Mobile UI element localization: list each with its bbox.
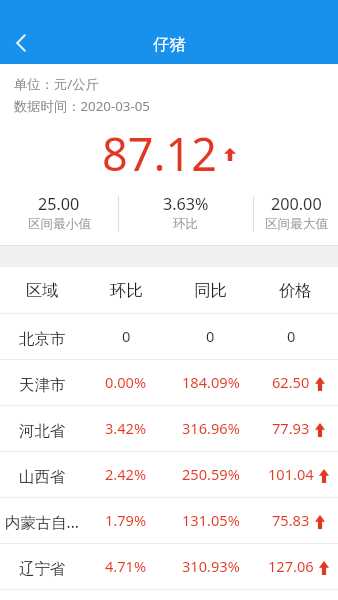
staticText: 316.96% (182, 418, 240, 438)
staticText: 131.05% (182, 510, 240, 530)
staticText: 0.00% (105, 372, 147, 392)
staticText: 环比 (173, 216, 199, 232)
button[interactable]: 200.00 (254, 190, 338, 234)
staticText: 价格 (279, 280, 312, 301)
staticText: 127.06 (268, 556, 314, 576)
button[interactable]: 河北省 (0, 406, 338, 451)
staticText: 184.09% (182, 372, 240, 392)
staticText: 天津市 (19, 375, 66, 394)
button[interactable]: 北京市 (0, 314, 338, 359)
staticText: 25.00 (38, 193, 80, 215)
staticText: 数据时间：2020-03-05 (14, 97, 150, 115)
staticText: 101.04 (268, 464, 314, 484)
staticText: 87.12 (102, 123, 218, 184)
staticText: 内蒙古自... (5, 512, 79, 533)
staticText: 辽宁省 (19, 559, 66, 578)
staticText: 环比 (110, 280, 143, 301)
staticText: 山西省 (19, 467, 66, 486)
button[interactable]: 山西省 (0, 452, 338, 497)
staticText: 62.50 (272, 372, 310, 392)
staticText: 3.63% (163, 193, 209, 215)
staticText: 区间最小值 (28, 216, 91, 232)
staticText: 3.42% (105, 418, 147, 438)
staticText: 4.71% (105, 556, 147, 576)
staticText: 75.83 (272, 510, 310, 530)
button[interactable]: 辽宁省 (0, 544, 338, 589)
staticText: 2.42% (105, 464, 147, 484)
staticText: 0 (206, 326, 215, 346)
button[interactable]: 天津市 (0, 360, 338, 405)
staticText: 仔猪 (153, 34, 186, 55)
staticText: 1.79% (105, 510, 147, 530)
staticText: 河北省 (19, 421, 66, 440)
staticText: 单位：元/公斤 (14, 75, 99, 93)
staticText: 北京市 (19, 329, 66, 348)
staticText: 250.59% (182, 464, 240, 484)
staticText: 同比 (194, 280, 227, 301)
button[interactable]: 3.63% (119, 190, 253, 234)
button[interactable]: Back (0, 22, 41, 64)
staticText: 200.00 (271, 193, 322, 215)
staticText: 310.93% (182, 556, 240, 576)
staticText: 区间最大值 (265, 216, 328, 232)
staticText: 0 (287, 326, 296, 346)
staticText: 77.93 (272, 418, 310, 438)
staticText: 0 (122, 326, 131, 346)
button[interactable]: 25.00 (0, 190, 118, 234)
button[interactable]: 内蒙古自... (0, 498, 338, 543)
staticText: 区域 (26, 280, 59, 301)
